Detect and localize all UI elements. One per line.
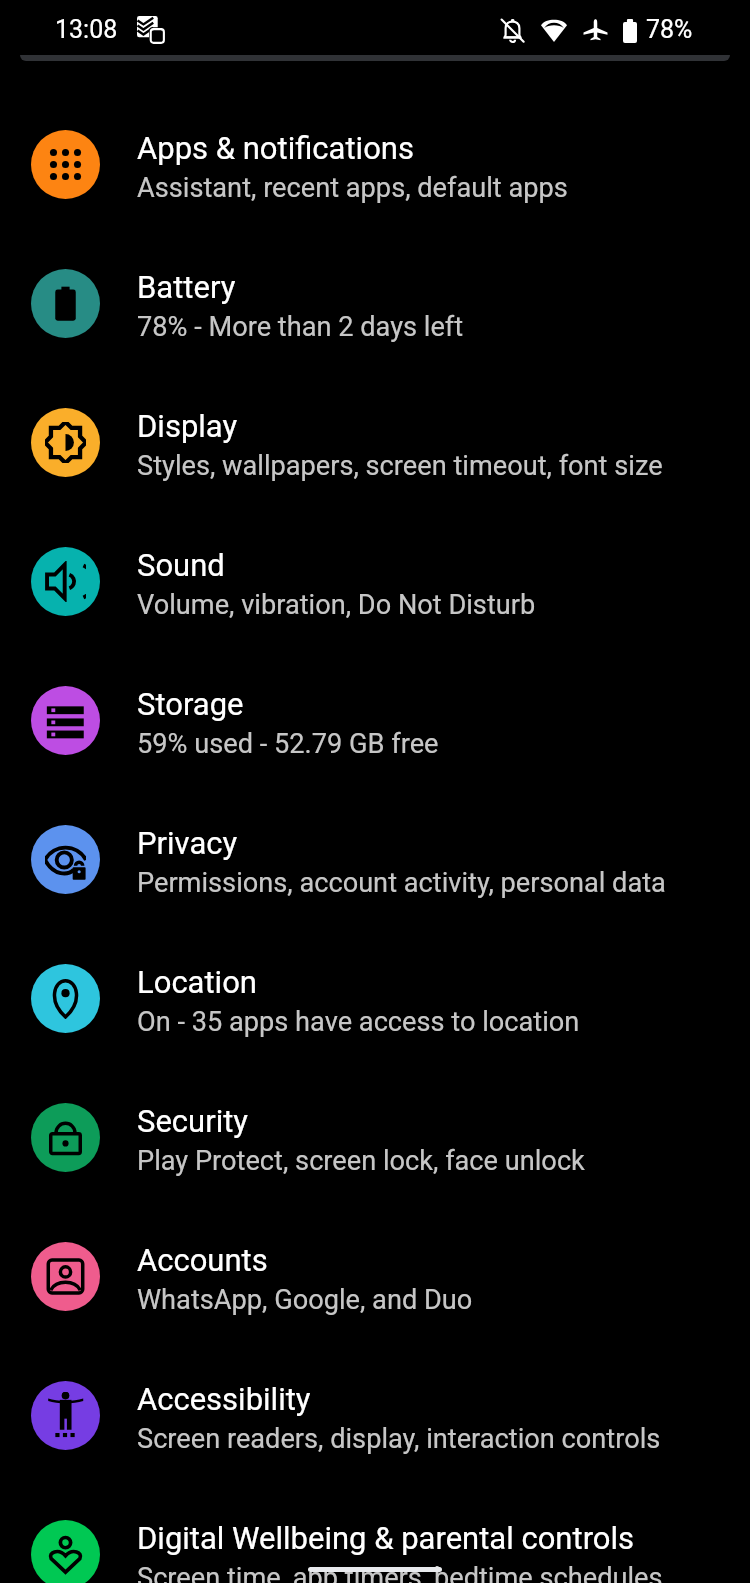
staticText: Assistant, recent apps, default apps bbox=[137, 172, 568, 204]
staticText: Battery bbox=[137, 269, 236, 305]
staticText: Storage bbox=[137, 686, 244, 722]
button[interactable]: Apps & notifications bbox=[0, 97, 750, 236]
staticText: Styles, wallpapers, screen timeout, font… bbox=[137, 450, 663, 482]
button[interactable]: Privacy bbox=[0, 792, 750, 931]
staticText: 78% bbox=[646, 15, 693, 44]
staticText: Screen time, app timers, bedtime schedul… bbox=[137, 1562, 663, 1583]
staticText: Privacy bbox=[137, 825, 238, 861]
staticText: On - 35 apps have access to location bbox=[137, 1006, 580, 1038]
button[interactable]: Accounts bbox=[0, 1209, 750, 1348]
staticText: Screen readers, display, interaction con… bbox=[137, 1423, 661, 1455]
button[interactable]: Digital Wellbeing & parental controls bbox=[0, 1487, 750, 1583]
button[interactable]: Battery bbox=[0, 236, 750, 375]
staticText: 13:08 bbox=[55, 15, 118, 44]
staticText: 78% - More than 2 days left bbox=[137, 311, 464, 343]
staticText: Volume, vibration, Do Not Disturb bbox=[137, 589, 536, 621]
staticText: Security bbox=[137, 1103, 249, 1139]
button[interactable]: Sound bbox=[0, 514, 750, 653]
button[interactable]: Location bbox=[0, 931, 750, 1070]
staticText: Apps & notifications bbox=[137, 130, 414, 166]
button[interactable]: Accessibility bbox=[0, 1348, 750, 1487]
staticText: Location bbox=[137, 964, 257, 1000]
staticText: Digital Wellbeing & parental controls bbox=[137, 1520, 635, 1556]
staticText: WhatsApp, Google, and Duo bbox=[137, 1284, 473, 1316]
staticText: Display bbox=[137, 408, 238, 444]
staticText: 59% used - 52.79 GB free bbox=[137, 728, 439, 760]
staticText: Accessibility bbox=[137, 1381, 311, 1417]
button[interactable]: Storage bbox=[0, 653, 750, 792]
staticText: Permissions, account activity, personal … bbox=[137, 867, 666, 899]
button[interactable]: Display bbox=[0, 375, 750, 514]
staticText: Play Protect, screen lock, face unlock bbox=[137, 1145, 585, 1177]
staticText: Sound bbox=[137, 547, 225, 583]
button[interactable]: Security bbox=[0, 1070, 750, 1209]
staticText: Accounts bbox=[137, 1242, 268, 1278]
